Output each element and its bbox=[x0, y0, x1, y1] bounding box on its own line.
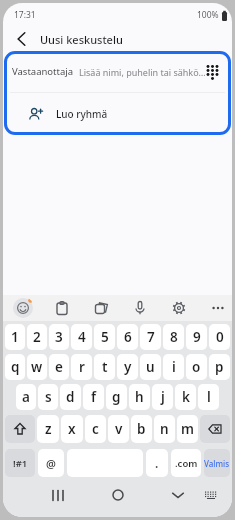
staticText: f bbox=[91, 388, 97, 406]
button[interactable] bbox=[5, 415, 35, 443]
staticText: i bbox=[172, 358, 176, 376]
button[interactable]: !#1 bbox=[5, 449, 35, 477]
button[interactable]: v bbox=[108, 415, 129, 443]
button[interactable] bbox=[105, 482, 131, 508]
button[interactable]: Vastaanottaja bbox=[4, 51, 231, 92]
button[interactable] bbox=[11, 29, 31, 49]
button[interactable]: u bbox=[140, 354, 161, 380]
staticText: p bbox=[215, 358, 224, 376]
button[interactable]: Luo ryhmä bbox=[4, 93, 231, 135]
button[interactable]: 7 bbox=[140, 324, 161, 350]
staticText: u bbox=[146, 358, 155, 376]
staticText: y bbox=[124, 358, 132, 376]
staticText: 100% bbox=[197, 9, 219, 21]
button[interactable]: y bbox=[117, 354, 138, 380]
button[interactable]: w bbox=[27, 354, 47, 380]
button[interactable]: i bbox=[163, 354, 184, 380]
staticText: o bbox=[192, 358, 201, 376]
staticText: b bbox=[137, 420, 146, 438]
button[interactable]: . bbox=[146, 449, 168, 477]
staticText: a bbox=[22, 388, 30, 406]
button[interactable]: s bbox=[38, 384, 58, 410]
button[interactable]: f bbox=[83, 384, 104, 410]
staticText: 6 bbox=[124, 328, 132, 346]
button[interactable]: k bbox=[175, 384, 196, 410]
button[interactable]: m bbox=[177, 415, 198, 443]
button[interactable] bbox=[168, 297, 190, 319]
staticText: x bbox=[68, 420, 76, 438]
button[interactable] bbox=[129, 297, 151, 319]
staticText: 1 bbox=[11, 328, 19, 346]
button[interactable] bbox=[12, 297, 34, 319]
staticText: n bbox=[160, 420, 169, 438]
button[interactable]: 4 bbox=[71, 324, 92, 350]
button[interactable]: 6 bbox=[117, 324, 138, 350]
button[interactable]: h bbox=[129, 384, 150, 410]
staticText: Valmis bbox=[204, 458, 230, 469]
staticText: t bbox=[102, 358, 108, 376]
staticText: Uusi keskustelu bbox=[40, 32, 123, 47]
button[interactable] bbox=[200, 484, 222, 506]
button[interactable]: j bbox=[152, 384, 173, 410]
button[interactable]: z bbox=[37, 415, 59, 443]
staticText: 7 bbox=[147, 328, 155, 346]
button[interactable]: q bbox=[5, 354, 25, 380]
staticText: r bbox=[79, 358, 85, 376]
button[interactable]: e bbox=[49, 354, 69, 380]
button[interactable]: 1 bbox=[5, 324, 25, 350]
staticText: 4 bbox=[78, 328, 86, 346]
button[interactable]: @ bbox=[38, 449, 64, 477]
staticText: m bbox=[181, 420, 194, 438]
button[interactable] bbox=[165, 482, 191, 508]
button[interactable]: 5 bbox=[94, 324, 115, 350]
staticText: d bbox=[66, 388, 75, 406]
button[interactable]: 2 bbox=[27, 324, 47, 350]
button[interactable]: n bbox=[154, 415, 175, 443]
button[interactable]: g bbox=[106, 384, 127, 410]
staticText: Luo ryhmä bbox=[56, 107, 108, 121]
button[interactable] bbox=[45, 482, 71, 508]
button[interactable]: a bbox=[16, 384, 36, 410]
button[interactable]: x bbox=[61, 415, 83, 443]
staticText: s bbox=[45, 388, 52, 406]
button[interactable]: c bbox=[85, 415, 106, 443]
staticText: j bbox=[161, 388, 165, 406]
button[interactable]: r bbox=[71, 354, 92, 380]
staticText: c bbox=[92, 420, 99, 438]
button[interactable]: .com bbox=[171, 449, 201, 477]
button[interactable]: t bbox=[94, 354, 115, 380]
button[interactable] bbox=[200, 415, 230, 443]
button[interactable]: 8 bbox=[163, 324, 184, 350]
button[interactable]: 9 bbox=[186, 324, 207, 350]
staticText: . bbox=[155, 455, 159, 471]
button[interactable]: Valmis bbox=[204, 449, 230, 477]
button[interactable]: 0 bbox=[209, 324, 230, 350]
staticText: g bbox=[112, 388, 121, 406]
staticText: q bbox=[11, 358, 20, 376]
button[interactable] bbox=[51, 297, 73, 319]
staticText: 5 bbox=[101, 328, 109, 346]
staticText: 8 bbox=[170, 328, 178, 346]
staticText: .com bbox=[175, 457, 198, 470]
staticText: w bbox=[31, 358, 43, 376]
button[interactable]: o bbox=[186, 354, 207, 380]
staticText: 3 bbox=[55, 328, 63, 346]
button[interactable]: p bbox=[209, 354, 230, 380]
button[interactable]: b bbox=[131, 415, 152, 443]
staticText: z bbox=[45, 420, 52, 438]
staticText: k bbox=[182, 388, 190, 406]
staticText: e bbox=[55, 358, 63, 376]
staticText: @ bbox=[46, 456, 56, 471]
staticText: 17:31 bbox=[14, 9, 36, 21]
button[interactable]: 3 bbox=[49, 324, 69, 350]
staticText: 0 bbox=[216, 328, 224, 346]
button[interactable] bbox=[207, 297, 229, 319]
button[interactable] bbox=[90, 297, 112, 319]
staticText: 9 bbox=[193, 328, 201, 346]
button[interactable]: d bbox=[60, 384, 81, 410]
staticText: h bbox=[135, 388, 144, 406]
button[interactable]: l bbox=[198, 384, 219, 410]
staticText: v bbox=[115, 420, 123, 438]
staticText: l bbox=[207, 388, 211, 406]
